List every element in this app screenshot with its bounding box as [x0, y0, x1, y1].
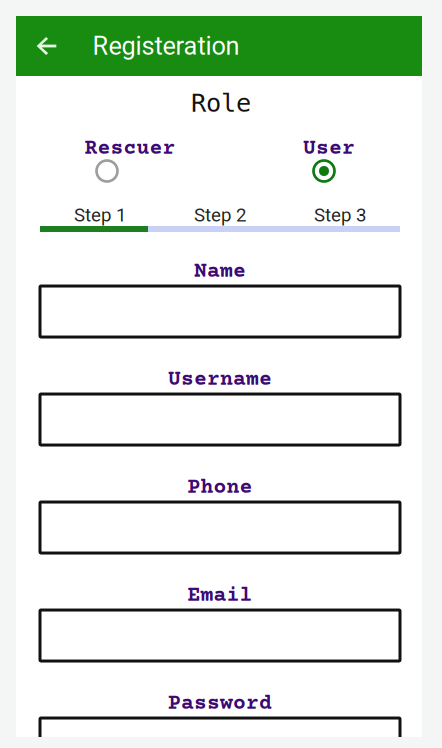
staticText: Phone: [187, 476, 252, 500]
button[interactable]: Rescuer: [32, 123, 182, 185]
staticText: Role: [191, 88, 251, 118]
staticText: Step 2: [194, 204, 246, 226]
staticText: Registeration: [92, 31, 239, 61]
staticText: Username: [168, 368, 272, 392]
button[interactable]: Name: [40, 258, 400, 337]
button[interactable]: Username: [40, 366, 400, 445]
button[interactable]: Email: [40, 582, 400, 661]
staticText: Step 1: [74, 204, 126, 226]
button[interactable]: Password: [40, 690, 400, 748]
button[interactable]: User: [249, 123, 399, 185]
staticText: Password: [168, 692, 272, 716]
staticText: Name: [194, 260, 246, 284]
button[interactable]: Phone: [40, 474, 400, 553]
button[interactable]: Back: [19, 19, 73, 73]
staticText: Email: [187, 584, 252, 608]
staticText: Step 3: [314, 204, 366, 226]
button[interactable]: Registeration: [76, 29, 256, 63]
staticText: User: [303, 137, 355, 161]
staticText: Rescuer: [84, 137, 175, 161]
